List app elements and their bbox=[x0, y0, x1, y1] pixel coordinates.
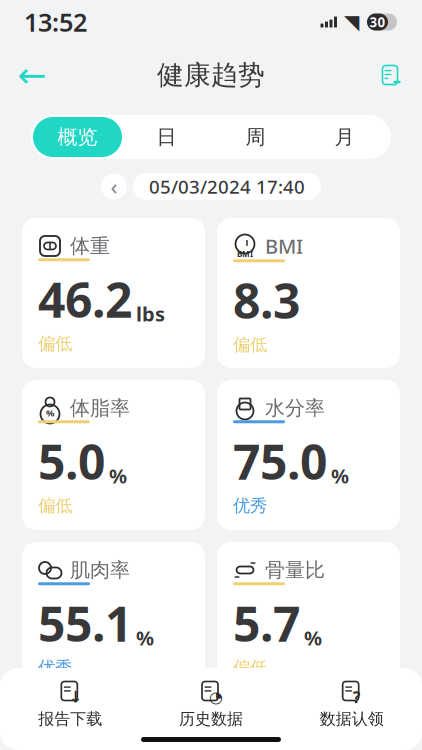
staticText: ◔ bbox=[209, 688, 223, 706]
button[interactable]: 骨量比 bbox=[217, 542, 400, 692]
button[interactable]: 水分率 bbox=[217, 380, 400, 530]
staticText: 46.2 bbox=[38, 267, 132, 331]
staticText: 55.1 bbox=[38, 591, 132, 655]
button[interactable]: BMI bbox=[217, 218, 400, 368]
staticText: % bbox=[136, 624, 154, 651]
staticText: 数据认领 bbox=[320, 709, 384, 729]
button[interactable]: 体重 bbox=[22, 218, 205, 368]
button[interactable]: ? bbox=[281, 680, 422, 729]
staticText: 偏低 bbox=[233, 657, 267, 678]
staticText: 体脂率 bbox=[70, 396, 130, 420]
button[interactable]: 肌肉率 bbox=[22, 542, 205, 692]
staticText: 日 bbox=[156, 125, 176, 149]
button[interactable]: 05/03/2024 17:40 bbox=[133, 173, 321, 200]
staticText: % bbox=[46, 407, 54, 419]
staticText: 偏低 bbox=[233, 334, 267, 355]
staticText: 历史数据 bbox=[179, 709, 243, 729]
staticText: ↓ bbox=[69, 688, 82, 706]
staticText: 优秀 bbox=[233, 495, 267, 516]
button[interactable]: Back bbox=[12, 55, 52, 95]
button[interactable]: ◔ bbox=[141, 680, 281, 729]
staticText: 05/03/2024 17:40 bbox=[149, 174, 305, 199]
staticText: 周 bbox=[245, 125, 265, 149]
button[interactable]: ↓ bbox=[0, 680, 141, 729]
staticText: 5.0 bbox=[38, 429, 105, 493]
staticText: BMI bbox=[265, 233, 303, 259]
staticText: 健康趋势 bbox=[157, 59, 265, 91]
staticText: 13:52 bbox=[24, 5, 87, 39]
staticText: 体重 bbox=[70, 234, 110, 258]
staticText: 8.3 bbox=[233, 268, 300, 332]
staticText: 优秀 bbox=[38, 657, 72, 678]
button[interactable]: 月 bbox=[300, 117, 389, 157]
staticText: BMI bbox=[237, 249, 253, 259]
staticText: % bbox=[109, 462, 127, 489]
staticText: 偏低 bbox=[38, 495, 72, 516]
staticText: 偏低 bbox=[38, 333, 72, 354]
button[interactable]: 概览 bbox=[33, 117, 122, 157]
staticText: 30 bbox=[369, 13, 385, 31]
staticText: 月 bbox=[334, 125, 354, 149]
staticText: ◥ bbox=[344, 11, 359, 33]
button[interactable]: Previous date bbox=[101, 173, 127, 199]
staticText: 5.7 bbox=[233, 591, 300, 655]
staticText: % bbox=[331, 462, 349, 489]
staticText: ← bbox=[17, 55, 46, 95]
staticText: % bbox=[304, 624, 322, 651]
button[interactable]: Edit report bbox=[370, 55, 410, 95]
staticText: ‹ bbox=[110, 172, 117, 201]
staticText: 报告下载 bbox=[38, 709, 102, 729]
button[interactable]: 周 bbox=[211, 117, 300, 157]
staticText: 肌肉率 bbox=[70, 558, 130, 582]
staticText: 骨量比 bbox=[265, 558, 325, 582]
staticText: 水分率 bbox=[265, 396, 325, 420]
staticText: 概览 bbox=[57, 125, 97, 149]
staticText: lbs bbox=[136, 300, 165, 327]
button[interactable]: 日 bbox=[122, 117, 211, 157]
button[interactable]: % bbox=[22, 380, 205, 530]
staticText: 75.0 bbox=[233, 429, 327, 493]
staticText: ? bbox=[353, 686, 361, 708]
